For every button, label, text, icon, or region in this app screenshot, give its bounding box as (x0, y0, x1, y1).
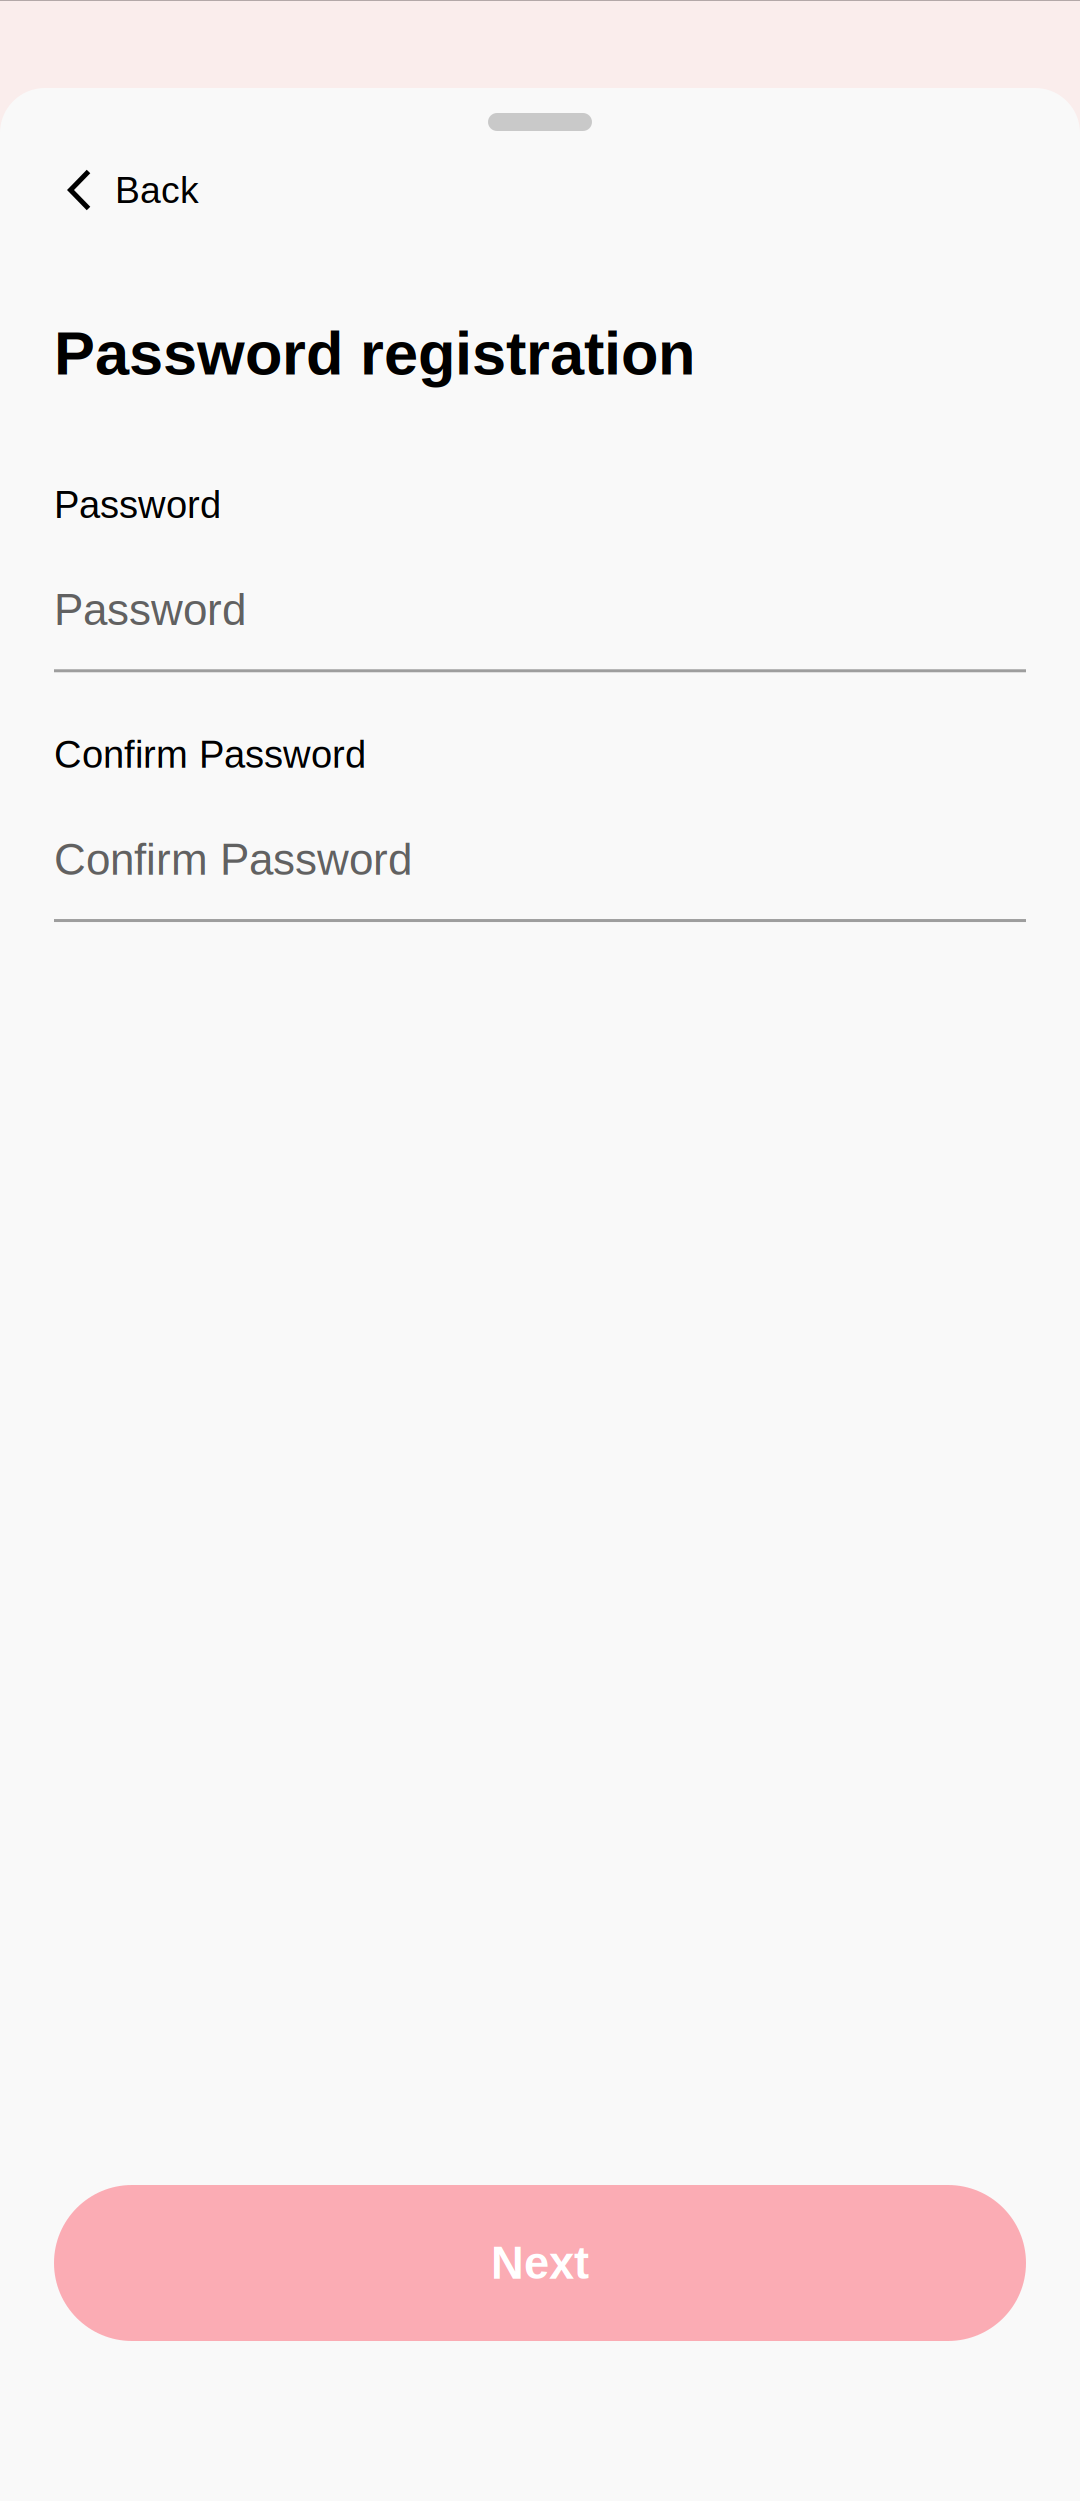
button[interactable]: Next (54, 2185, 1026, 2341)
button[interactable]: Back (0, 131, 229, 229)
staticText: Confirm Password (54, 835, 412, 884)
staticText: Next (491, 2238, 589, 2288)
staticText: Back (115, 169, 199, 211)
button[interactable]: Confirm Password (54, 776, 1026, 922)
staticText: Password (54, 483, 221, 526)
button[interactable]: Password (54, 526, 1026, 672)
staticText: Password registration (54, 319, 695, 387)
staticText: Confirm Password (54, 733, 366, 776)
staticText: Password (54, 585, 246, 634)
